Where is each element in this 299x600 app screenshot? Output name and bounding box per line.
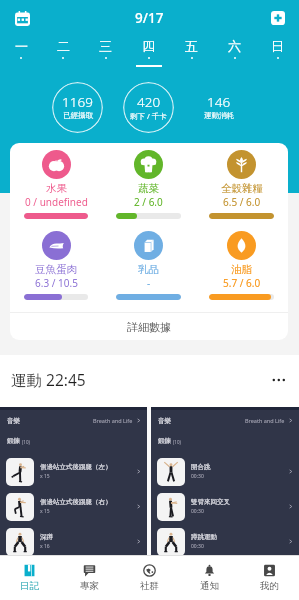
staticText: 5.7 / 6.0 <box>223 276 261 290</box>
button[interactable]: 蔬菜 <box>102 150 195 231</box>
staticText: 鍛鍊 <box>7 437 20 445</box>
staticText: (10) <box>22 439 30 445</box>
button[interactable]: 四 <box>127 36 170 72</box>
button[interactable]: 豆魚蛋肉 <box>10 231 102 312</box>
button[interactable]: 146 <box>193 82 244 133</box>
staticText: 五 <box>185 38 198 54</box>
staticText: Breath and Life <box>93 417 133 424</box>
staticText: 9/17 <box>135 9 164 27</box>
staticText: 二 <box>57 38 70 54</box>
button[interactable]: 三 <box>84 36 127 72</box>
staticText: 6.5 / 6.0 <box>223 195 261 209</box>
staticText: Breath and Life <box>245 417 285 424</box>
staticText: 詳細數據 <box>127 320 171 334</box>
button[interactable]: 一 <box>0 36 42 72</box>
staticText: 雙臂來回交叉 <box>191 498 230 506</box>
staticText: 四 <box>142 38 155 54</box>
staticText: 全穀雜糧 <box>221 182 263 195</box>
staticText: x 15 <box>40 473 50 480</box>
staticText: 音樂 <box>158 417 171 425</box>
staticText: 運動消耗 <box>204 111 234 120</box>
staticText: 專家 <box>80 580 99 592</box>
staticText: 油脂 <box>231 263 252 276</box>
staticText: 00:30 <box>191 473 204 480</box>
staticText: 我的 <box>260 580 279 592</box>
staticText: 深蹲 <box>40 533 53 541</box>
staticText: x 15 <box>40 508 50 515</box>
staticText: 六 <box>228 38 241 54</box>
staticText: - <box>147 276 151 290</box>
staticText: 1169 <box>62 93 93 111</box>
staticText: 側邊站立式後踢腿（右） <box>40 498 112 506</box>
staticText: 00:30 <box>191 543 204 550</box>
button[interactable]: 五 <box>170 36 213 72</box>
button[interactable]: 六 <box>213 36 256 72</box>
staticText: 開合跳 <box>191 463 211 471</box>
button[interactable]: 日 <box>256 36 299 72</box>
staticText: 一 <box>15 38 28 54</box>
button[interactable]: 專家 <box>59 556 119 600</box>
button[interactable]: 日記 <box>0 556 59 600</box>
staticText: 剩下 / 千卡 <box>130 111 167 121</box>
staticText: 蔬菜 <box>138 182 159 195</box>
staticText: 420 <box>137 93 161 111</box>
button[interactable]: 二 <box>42 36 84 72</box>
staticText: 146 <box>207 93 231 111</box>
button[interactable]: 1169 <box>52 82 103 133</box>
staticText: 0 / undefined <box>25 195 88 209</box>
staticText: 6.3 / 10.5 <box>35 276 78 290</box>
staticText: 日 <box>271 38 284 54</box>
button[interactable]: 我的 <box>239 556 299 600</box>
staticText: 乳品 <box>138 263 159 276</box>
button[interactable]: 油脂 <box>195 231 288 312</box>
staticText: 側邊站立式後踢腿（左） <box>40 463 112 471</box>
button[interactable]: Add <box>266 6 290 30</box>
staticText: 2 / 6.0 <box>134 195 163 209</box>
staticText: (10) <box>173 439 181 445</box>
button[interactable]: 音樂 <box>151 407 299 555</box>
staticText: 社群 <box>140 580 159 592</box>
staticText: 水果 <box>46 182 67 195</box>
button[interactable]: Calendar <box>9 5 35 31</box>
staticText: 00:30 <box>191 508 204 515</box>
button[interactable]: 水果 <box>10 150 102 231</box>
staticText: 豆魚蛋肉 <box>35 263 77 276</box>
button[interactable]: 通知 <box>179 556 239 600</box>
staticText: 已經攝取 <box>63 111 93 120</box>
staticText: 通知 <box>200 580 219 592</box>
button[interactable]: 全穀雜糧 <box>195 150 288 231</box>
button[interactable]: 乳品 <box>102 231 195 312</box>
staticText: x 16 <box>40 543 50 550</box>
staticText: 蹲跳運動 <box>191 533 217 541</box>
staticText: 運動 22:45 <box>11 369 86 390</box>
button[interactable]: More options <box>268 369 290 391</box>
staticText: 音樂 <box>7 417 20 425</box>
button[interactable]: 音樂 <box>0 407 147 555</box>
button[interactable]: 詳細數據 <box>10 313 288 340</box>
staticText: 三 <box>99 38 112 54</box>
staticText: 日記 <box>20 580 39 592</box>
button[interactable]: 420 <box>123 82 174 133</box>
staticText: 鍛鍊 <box>158 437 171 445</box>
button[interactable]: 社群 <box>119 556 179 600</box>
